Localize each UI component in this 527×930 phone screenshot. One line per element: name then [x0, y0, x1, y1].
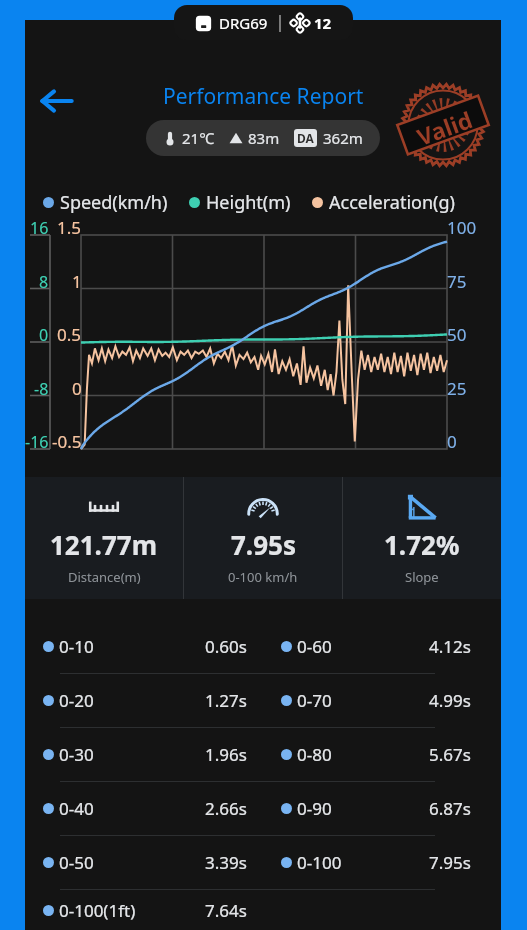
- staticText: 0: [39, 324, 49, 346]
- staticText: 0-10: [59, 635, 94, 658]
- staticText: 0-30: [59, 743, 94, 766]
- staticText: 0-20: [59, 689, 94, 712]
- button[interactable]: 0-50: [25, 836, 501, 889]
- staticText: 16: [30, 217, 49, 239]
- staticText: 50: [447, 323, 467, 346]
- button[interactable]: Back: [32, 77, 80, 125]
- button[interactable]: 0-40: [25, 782, 501, 835]
- staticText: Acceleration(g): [329, 190, 455, 215]
- staticText: 0-100 km/h: [228, 568, 298, 586]
- staticText: 0-70: [297, 689, 332, 712]
- staticText: 0: [447, 430, 457, 453]
- staticText: 1.5: [57, 216, 82, 239]
- staticText: 0-90: [297, 797, 332, 820]
- staticText: 1.72%: [384, 527, 460, 562]
- staticText: 0-100: [297, 851, 342, 874]
- staticText: 4.99s: [429, 689, 471, 712]
- staticText: -16: [25, 431, 49, 453]
- staticText: 0-60: [297, 635, 332, 658]
- staticText: 1.96s: [205, 743, 247, 766]
- staticText: Valid: [412, 103, 477, 152]
- button[interactable]: 0-100(1ft): [25, 890, 501, 930]
- staticText: 0-100(1ft): [59, 899, 136, 922]
- staticText: 7.95s: [231, 527, 296, 562]
- staticText: DA: [297, 130, 314, 146]
- button[interactable]: 1.72%: [343, 477, 501, 599]
- button[interactable]: Valid stamp: [398, 80, 488, 170]
- staticText: 121.77m: [50, 527, 158, 562]
- staticText: 8: [39, 271, 49, 293]
- button[interactable]: 0-10: [25, 620, 501, 673]
- staticText: 2.66s: [205, 797, 247, 820]
- button[interactable]: 21℃: [146, 120, 380, 156]
- staticText: Distance(m): [68, 568, 141, 586]
- staticText: Slope: [405, 568, 439, 586]
- staticText: 0-50: [59, 851, 94, 874]
- staticText: 0-40: [59, 797, 94, 820]
- staticText: 12: [314, 13, 332, 33]
- staticText: 6.87s: [429, 797, 471, 820]
- button[interactable]: 121.77m: [25, 477, 183, 599]
- staticText: 25: [447, 377, 467, 400]
- button[interactable]: 0-30: [25, 728, 501, 781]
- button[interactable]: 0-20: [25, 674, 501, 727]
- staticText: 5.67s: [429, 743, 471, 766]
- staticText: Speed(km/h): [60, 190, 168, 215]
- staticText: Performance Report: [163, 82, 364, 111]
- staticText: 7.64s: [205, 899, 247, 922]
- staticText: -0.5: [52, 430, 82, 453]
- staticText: 0.60s: [205, 635, 247, 658]
- staticText: 1.27s: [205, 689, 247, 712]
- staticText: -8: [34, 378, 49, 400]
- staticText: 0-80: [297, 743, 332, 766]
- staticText: Height(m): [206, 190, 291, 215]
- staticText: DRG69: [219, 13, 268, 33]
- staticText: 21℃: [182, 128, 215, 148]
- staticText: 100: [447, 216, 477, 239]
- staticText: 0: [72, 377, 82, 400]
- button[interactable]: 7.95s: [184, 477, 342, 599]
- staticText: 4.12s: [429, 635, 471, 658]
- staticText: 83m: [248, 128, 280, 148]
- staticText: 362m: [323, 128, 363, 148]
- staticText: 0.5: [57, 323, 82, 346]
- staticText: 7.95s: [429, 851, 471, 874]
- button[interactable]: DRG69: [174, 5, 353, 40]
- staticText: 3.39s: [205, 851, 247, 874]
- staticText: 1: [72, 270, 82, 293]
- staticText: 75: [447, 270, 467, 293]
